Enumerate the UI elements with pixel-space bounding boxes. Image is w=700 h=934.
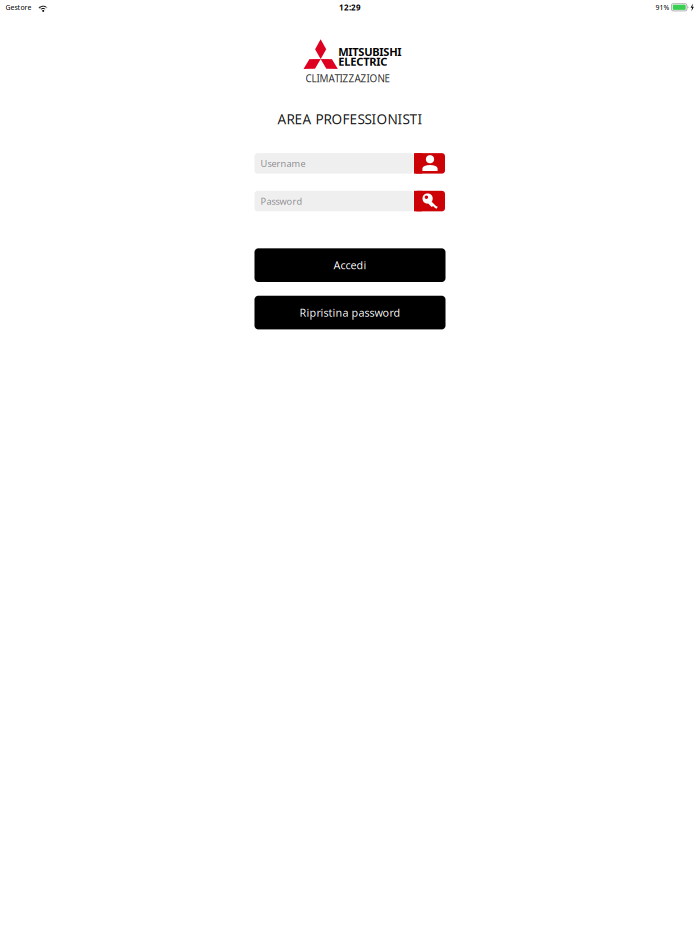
button[interactable]: Accedi [254, 248, 445, 282]
staticText: Gestore [6, 3, 32, 12]
staticText: ELECTRIC [338, 54, 387, 69]
staticText: MITSUBISHI [338, 44, 401, 59]
staticText: Username [260, 157, 305, 170]
staticText: Password [260, 195, 302, 207]
staticText: AREA PROFESSIONISTI [277, 110, 422, 128]
staticText: Ripristina password [299, 305, 400, 320]
staticText: 91% [655, 3, 669, 12]
button[interactable]: Ripristina password [254, 296, 445, 329]
staticText: 12:29 [339, 2, 361, 13]
button[interactable]: Password field [414, 191, 445, 211]
staticText: CLIMATIZZAZIONE [306, 72, 390, 85]
staticText: Accedi [333, 258, 366, 272]
button[interactable]: Username field [414, 153, 445, 174]
